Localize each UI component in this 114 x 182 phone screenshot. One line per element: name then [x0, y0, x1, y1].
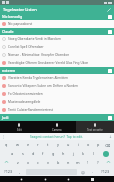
button[interactable]: Shift — [103, 158, 113, 167]
staticText: n — [67, 160, 70, 165]
staticText: Edit — [17, 128, 22, 132]
button[interactable]: Text on write — [76, 121, 114, 133]
button[interactable]: h — [58, 149, 68, 158]
staticText: Claude — [2, 29, 108, 34]
button[interactable]: r — [33, 140, 43, 149]
button[interactable]: Shift — [1, 158, 12, 167]
button[interactable]: k — [78, 149, 88, 158]
button[interactable]: o — [83, 140, 93, 149]
button[interactable]: n — [63, 158, 73, 167]
button[interactable]: t — [43, 140, 53, 149]
staticText: l — [93, 151, 94, 156]
staticText: Judi — [2, 115, 108, 120]
button[interactable]: w — [12, 140, 23, 149]
button[interactable]: Stoeg Obendiarte Verdi in Maecken — [0, 35, 114, 43]
staticText: z — [17, 160, 19, 165]
button[interactable]: u — [63, 140, 73, 149]
staticText: c — [37, 160, 39, 165]
button[interactable]: j — [68, 149, 78, 158]
staticText: m — [76, 160, 80, 165]
button[interactable]: z — [12, 158, 23, 167]
button[interactable]: p — [93, 140, 103, 149]
button[interactable]: noteren — [0, 67, 114, 74]
staticText: b — [57, 160, 60, 165]
button[interactable]: Corelist Spell Ofrendaer — [0, 43, 114, 51]
staticText: Corelist Spell Ofrendaer — [8, 45, 44, 49]
staticText: f — [42, 151, 44, 156]
button[interactable]: Sceconto Vilkepern Subre om Driften a No… — [0, 82, 114, 90]
button[interactable]: x — [23, 158, 33, 167]
staticText: t — [47, 142, 49, 147]
button[interactable]: Recents — [67, 178, 70, 181]
button[interactable]: m — [73, 158, 83, 167]
button[interactable]: Mustevadsseengdlele — [0, 98, 114, 106]
button[interactable]: Nic papsoakorst — [0, 20, 114, 28]
button[interactable]: Camera — [38, 121, 76, 133]
button[interactable]: Judi — [0, 114, 114, 121]
button[interactable]: ? — [93, 158, 103, 167]
staticText: w — [16, 142, 19, 147]
button[interactable]: s — [18, 149, 28, 158]
button[interactable]: d — [28, 149, 38, 158]
button[interactable]: g — [48, 149, 58, 158]
staticText: Tegelwater Listen — [3, 7, 106, 12]
button[interactable]: b — [53, 158, 63, 167]
staticText: Mustevadsseengdlele — [8, 100, 41, 104]
staticText: ?123 — [101, 169, 110, 174]
button[interactable]: Claude — [0, 28, 114, 35]
staticText: ?123 — [4, 169, 13, 174]
button[interactable]: f — [38, 149, 48, 158]
staticText: h — [62, 151, 65, 156]
button[interactable]: Nonsze - Minimalitae Kroepfer Obendon — [0, 51, 114, 59]
button[interactable]: Nic benodig — [0, 13, 114, 20]
staticText: ☺ — [81, 170, 85, 174]
button[interactable]: ! — [83, 158, 93, 167]
staticText: k — [82, 151, 85, 156]
staticText: u — [67, 142, 70, 147]
staticText: q — [5, 142, 8, 147]
staticText: g — [52, 151, 55, 156]
button[interactable]: l — [88, 149, 98, 158]
button[interactable]: , — [15, 167, 25, 176]
button[interactable]: c — [33, 158, 43, 167]
button[interactable]: ?123 — [1, 167, 15, 176]
staticText: Nic papsoakorst — [8, 22, 33, 26]
staticText: Nic benodig — [2, 14, 108, 19]
staticText: x — [27, 160, 30, 165]
button[interactable]: e — [23, 140, 33, 149]
button[interactable]: q — [1, 140, 12, 149]
staticText: Fo Orbotestonnvierden — [8, 92, 43, 96]
staticText: ? — [97, 160, 99, 165]
staticText: y — [57, 142, 59, 147]
button[interactable]: Edit — [0, 121, 38, 133]
button[interactable]: v — [43, 158, 53, 167]
button[interactable]: Back — [20, 178, 23, 181]
button[interactable]: a — [7, 149, 18, 158]
staticText: s — [22, 151, 24, 156]
button[interactable]: ☺ — [78, 167, 88, 176]
staticText: . — [92, 169, 94, 174]
staticText: ↓ — [109, 135, 112, 139]
button[interactable]: Vezedtigbe Ofteren Grosbeerer Vereld Gla… — [0, 59, 114, 67]
staticText: Sceconto Vilkepern Subre om Driften a No… — [8, 84, 78, 88]
button[interactable]: ⌫ — [103, 140, 113, 149]
button[interactable]: i — [73, 140, 83, 149]
staticText: Camera — [52, 128, 62, 132]
staticText: v — [47, 160, 49, 165]
button[interactable]: Home — [44, 178, 47, 181]
staticText: d — [32, 151, 35, 156]
button[interactable]: Fo Orbotestonnvierden — [0, 90, 114, 98]
button[interactable]: y — [53, 140, 63, 149]
staticText: Vezedtigbe Ofteren Grosbeerer Vereld Gla… — [8, 61, 89, 65]
button[interactable]: Tentii Culaterflandemniertrest — [0, 106, 114, 114]
button[interactable]: Enter — [103, 151, 109, 157]
button[interactable]: ?123 — [98, 167, 113, 176]
button[interactable]: Edit — [106, 7, 111, 12]
button[interactable]: Vlaratten Kenda Tryplenarinen Alenitten — [0, 74, 114, 82]
staticText: Seagest contact herun? Tap to edit. — [30, 135, 84, 139]
staticText: Tentii Culaterflandemniertrest — [8, 108, 53, 112]
staticText: Text on write — [87, 128, 103, 132]
